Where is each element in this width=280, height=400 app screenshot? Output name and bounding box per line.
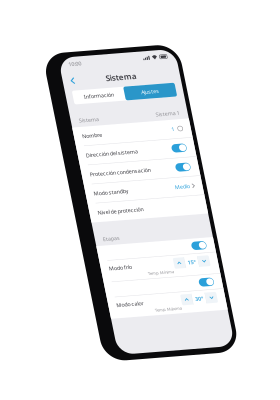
button[interactable]: Modo standby [0,129,117,148]
button[interactable]: Aumentar [73,210,84,221]
button[interactable]: Nombre [0,71,117,90]
button[interactable]: Disminuir [98,247,109,258]
button[interactable]: Disminuir [98,210,109,221]
staticText: Protección condensación [8,116,69,123]
button[interactable]: Activar etapa frío [0,192,117,207]
button[interactable]: Protección condensación [0,110,117,129]
button[interactable]: Aumentar [73,247,84,258]
button[interactable]: Dirección del sistema [0,90,117,109]
button[interactable]: Activar etapa calor [0,229,117,244]
button[interactable]: Nivel de protección [0,149,117,168]
staticText: Medio [89,135,104,143]
staticText: Dirección del sistema [8,96,60,104]
staticText: 15° [87,212,95,219]
